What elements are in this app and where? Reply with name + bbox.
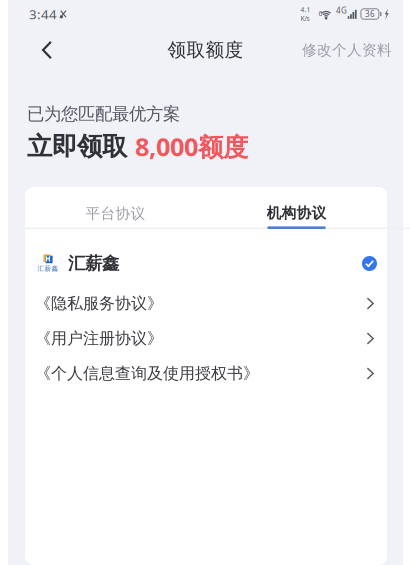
staticText: 6 [318, 9, 322, 18]
staticText: 立即领取 [27, 131, 127, 162]
staticText: 领取额度 [167, 38, 243, 61]
staticText: 汇薪鑫 [68, 253, 119, 274]
staticText: 机构协议 [266, 204, 326, 222]
staticText: 4G [336, 5, 347, 16]
button[interactable]: 返回 [26, 28, 68, 72]
staticText: 《用户注册协议》 [35, 329, 163, 348]
staticText: 《隐私服务协议》 [35, 294, 163, 313]
staticText: 修改个人资料 [302, 41, 392, 59]
button[interactable]: 《个人信息查询及使用授权书》 [25, 356, 387, 391]
staticText: 4.1 [300, 5, 310, 14]
button[interactable]: 修改个人资料 [294, 28, 400, 72]
staticText: 8,000额度 [135, 130, 248, 163]
button[interactable]: 汇薪鑫 [25, 229, 387, 286]
button[interactable]: 平台协议 [25, 187, 206, 229]
button[interactable]: 《用户注册协议》 [25, 321, 387, 356]
staticText: 《个人信息查询及使用授权书》 [35, 364, 259, 383]
staticText: 平台协议 [85, 204, 145, 222]
staticText: 汇薪鑫 [37, 264, 58, 273]
staticText: K/s [300, 14, 309, 23]
staticText: 3:44 [29, 5, 57, 23]
staticText: 已为您匹配最优方案 [27, 103, 180, 125]
staticText: 36 [365, 9, 375, 19]
button[interactable]: 《隐私服务协议》 [25, 286, 387, 321]
button[interactable]: 机构协议 [206, 187, 387, 229]
